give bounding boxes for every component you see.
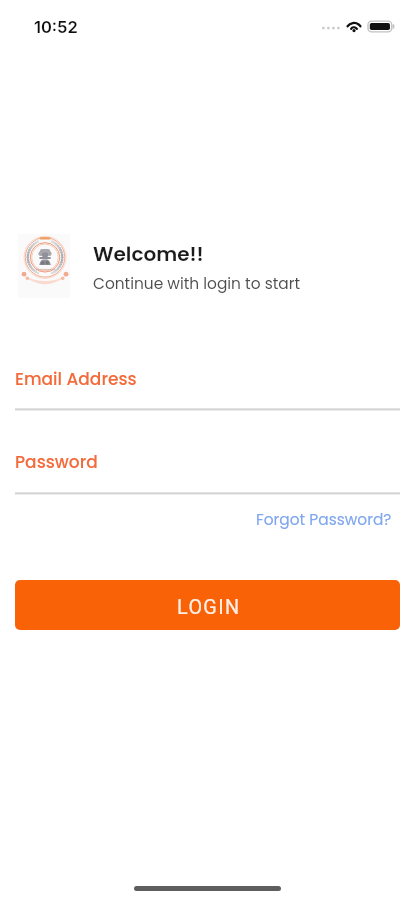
other: Battery [368,20,395,33]
button[interactable]: Password [0,443,415,495]
staticText: Password [15,450,98,474]
staticText: Welcome!! [93,240,204,268]
staticText: LOGIN [177,596,241,619]
staticText: Forgot Password? [256,509,392,531]
staticText: 10:52 [34,17,78,37]
staticText: Continue with login to start [93,273,301,295]
other: Wi-Fi [345,19,363,32]
other: Organisation emblem [18,234,70,298]
button[interactable]: LOGIN [15,580,400,630]
other: Cellular signal [321,19,342,32]
button[interactable]: Forgot Password? [252,506,396,534]
staticText: Email Address [15,367,137,391]
button[interactable]: Email Address [0,360,415,411]
